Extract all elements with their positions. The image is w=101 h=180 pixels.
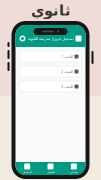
staticText: الصف 2 (60, 69, 72, 74)
staticText: الفصول (46, 170, 54, 173)
button[interactable]: الصف 3 (19, 81, 81, 92)
staticText: الرئيسية (23, 170, 32, 173)
staticText: ثانوي (30, 2, 70, 19)
staticText: تسجيل خروج (51, 36, 73, 41)
button[interactable]: الصف 2 (19, 66, 81, 77)
button[interactable]: حسابي (62, 162, 85, 175)
staticText: الصف 3 (60, 84, 72, 89)
button[interactable]: School (19, 35, 49, 41)
staticText: حسابي (70, 170, 78, 173)
staticText: الصف 1 (60, 54, 72, 59)
staticText: مدرسة الثانوية (27, 36, 49, 41)
button[interactable]: الفصول (39, 162, 62, 175)
button[interactable]: الرئيسية (15, 162, 39, 175)
button[interactable]: الصف 1 (19, 51, 81, 62)
button[interactable]: Logout (51, 35, 81, 41)
